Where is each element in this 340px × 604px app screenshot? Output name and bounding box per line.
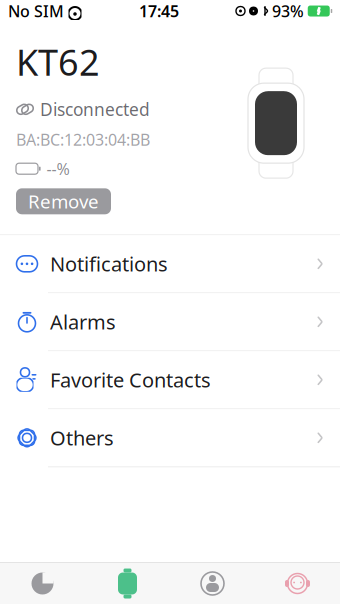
button[interactable]: Alarms (0, 293, 340, 350)
staticText: BA:BC:12:03:04:BB (16, 129, 150, 150)
button[interactable]: Others (0, 409, 340, 466)
button[interactable]: Notifications (0, 235, 340, 292)
staticText: Others (50, 424, 114, 451)
staticText: Alarms (50, 308, 116, 335)
staticText: KT62 (16, 38, 100, 86)
staticText: 17:45 (139, 0, 179, 22)
button[interactable]: Statistics (0, 563, 85, 604)
staticText: Remove (28, 189, 99, 214)
staticText: Disconnected (40, 98, 150, 121)
button[interactable]: Favorite Contacts (0, 351, 340, 408)
button[interactable]: Profile (170, 563, 255, 604)
staticText: 93% (272, 0, 304, 22)
staticText: Favorite Contacts (50, 366, 211, 393)
staticText: Notifications (50, 250, 168, 277)
staticText: No SIM (8, 0, 64, 22)
staticText: --% (47, 158, 70, 179)
button[interactable]: Device (85, 563, 170, 604)
button[interactable]: Support (255, 563, 340, 604)
button[interactable]: Remove (16, 188, 111, 214)
